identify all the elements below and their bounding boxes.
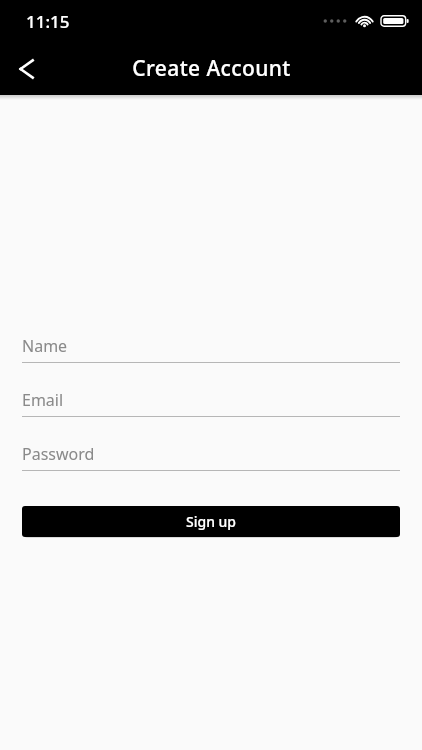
staticText: Email: [22, 389, 64, 411]
staticText: Sign up: [186, 512, 237, 531]
staticText: Password: [22, 443, 95, 465]
staticText: Create Account: [132, 54, 291, 83]
staticText: Name: [22, 335, 68, 357]
button[interactable]: Password: [22, 438, 400, 471]
button[interactable]: Sign up: [22, 506, 400, 537]
button[interactable]: Back: [0, 43, 52, 95]
staticText: 11:15: [26, 10, 70, 33]
button[interactable]: Name: [22, 330, 400, 363]
button[interactable]: Email: [22, 384, 400, 417]
